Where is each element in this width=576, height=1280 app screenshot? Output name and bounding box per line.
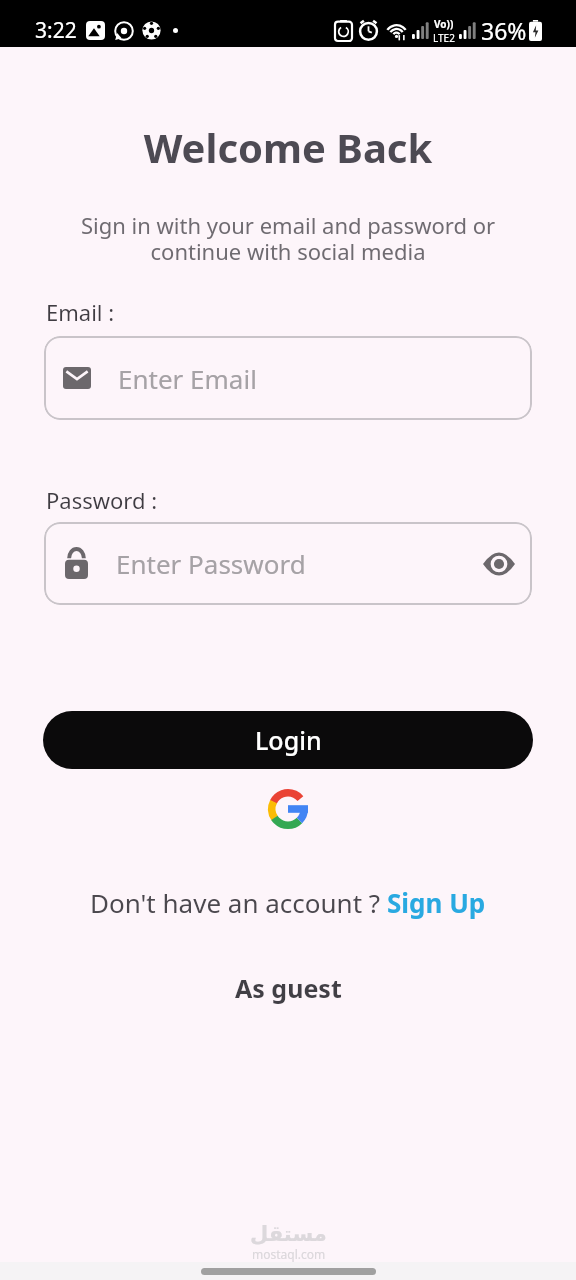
button[interactable]: As guest — [235, 971, 342, 1005]
staticText: Sign in with your email and password or … — [0, 210, 576, 267]
button[interactable]: Don't have an account ? — [90, 885, 486, 920]
staticText: Vo)) — [434, 17, 454, 31]
button[interactable]: Enter Password — [44, 522, 532, 605]
button[interactable]: Login — [43, 711, 533, 769]
staticText: Enter Password — [116, 546, 483, 581]
staticText: LTE2 — [433, 31, 455, 45]
staticText: Password : — [46, 485, 158, 515]
staticText: مستقل — [250, 1222, 327, 1246]
button[interactable] — [267, 788, 309, 830]
staticText: 36% — [481, 15, 527, 46]
button[interactable]: Enter Email — [44, 336, 532, 420]
staticText: Login — [255, 723, 322, 757]
staticText: Welcome Back — [0, 120, 576, 174]
staticText: Sign Up — [387, 885, 486, 920]
staticText: Email : — [46, 297, 115, 327]
staticText: mostaql.com — [252, 1246, 326, 1262]
staticText: Don't have an account ? — [90, 885, 387, 920]
staticText: 3:22 — [35, 16, 77, 45]
staticText: Enter Email — [118, 361, 257, 396]
